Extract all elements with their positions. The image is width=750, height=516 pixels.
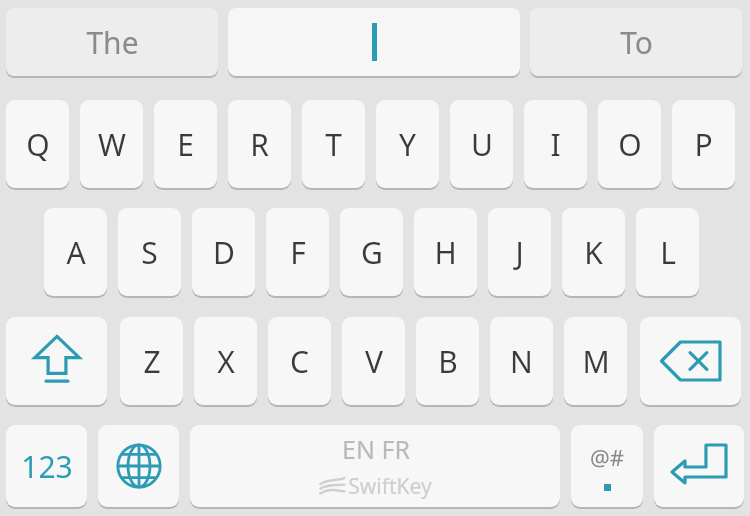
button[interactable]: K bbox=[562, 208, 625, 296]
button[interactable]: H bbox=[414, 208, 477, 296]
button[interactable]: V bbox=[342, 317, 405, 405]
button[interactable]: Backspace bbox=[640, 317, 741, 405]
button[interactable]: X bbox=[194, 317, 257, 405]
staticText: V bbox=[365, 341, 383, 382]
button[interactable]: D bbox=[192, 208, 255, 296]
button[interactable]: Q bbox=[6, 100, 69, 188]
button[interactable]: S bbox=[118, 208, 181, 296]
staticText: G bbox=[361, 232, 383, 273]
staticText: X bbox=[217, 341, 235, 382]
staticText: D bbox=[213, 232, 235, 273]
staticText: B bbox=[438, 341, 458, 382]
button[interactable]: Z bbox=[120, 317, 183, 405]
staticText: W bbox=[98, 124, 126, 165]
staticText: O bbox=[618, 124, 642, 165]
button[interactable]: W bbox=[80, 100, 143, 188]
button[interactable]: N bbox=[490, 317, 553, 405]
staticText: Y bbox=[399, 124, 416, 165]
staticText: 123 bbox=[21, 446, 73, 487]
button[interactable]: G bbox=[340, 208, 403, 296]
button[interactable]: To bbox=[530, 8, 742, 76]
staticText: M bbox=[582, 341, 610, 382]
staticText: I bbox=[550, 124, 561, 165]
button[interactable]: F bbox=[266, 208, 329, 296]
button[interactable]: E bbox=[154, 100, 217, 188]
button[interactable]: M bbox=[564, 317, 627, 405]
staticText: J bbox=[515, 232, 524, 273]
staticText: E bbox=[177, 124, 194, 165]
staticText: EN FR bbox=[342, 432, 410, 466]
staticText: Z bbox=[143, 341, 161, 382]
staticText: S bbox=[141, 232, 158, 273]
button[interactable]: C bbox=[268, 317, 331, 405]
staticText: Q bbox=[26, 124, 50, 165]
button[interactable]: R bbox=[228, 100, 291, 188]
button[interactable]: Shift bbox=[6, 317, 107, 405]
button[interactable]: P bbox=[672, 100, 735, 188]
staticText: @# bbox=[590, 442, 624, 472]
staticText: F bbox=[290, 232, 306, 273]
button[interactable]: O bbox=[598, 100, 661, 188]
button[interactable]: U bbox=[450, 100, 513, 188]
button[interactable]: L bbox=[636, 208, 699, 296]
staticText: H bbox=[434, 232, 457, 273]
button[interactable]: B bbox=[416, 317, 479, 405]
button[interactable]: The bbox=[6, 8, 218, 76]
button[interactable]: I bbox=[524, 100, 587, 188]
button[interactable]: Period and symbols bbox=[571, 425, 643, 507]
staticText: A bbox=[66, 232, 86, 273]
button[interactable]: Y bbox=[376, 100, 439, 188]
staticText: L bbox=[660, 232, 676, 273]
button[interactable]: Current word bbox=[228, 8, 520, 76]
button[interactable]: J bbox=[488, 208, 551, 296]
staticText: K bbox=[584, 232, 603, 273]
staticText: C bbox=[290, 341, 309, 382]
button[interactable]: T bbox=[302, 100, 365, 188]
button[interactable]: Enter bbox=[654, 425, 744, 507]
staticText: U bbox=[471, 124, 493, 165]
button[interactable]: Change language bbox=[98, 425, 179, 507]
staticText: N bbox=[510, 341, 533, 382]
staticText: T bbox=[325, 124, 342, 165]
staticText: To bbox=[620, 22, 653, 63]
button[interactable]: Numbers and symbols bbox=[6, 425, 87, 507]
staticText: The bbox=[86, 22, 139, 63]
button[interactable]: Space bbox=[190, 425, 560, 507]
staticText: R bbox=[250, 124, 269, 165]
button[interactable]: A bbox=[44, 208, 107, 296]
staticText: P bbox=[694, 124, 713, 165]
staticText: SwiftKey bbox=[348, 472, 432, 501]
